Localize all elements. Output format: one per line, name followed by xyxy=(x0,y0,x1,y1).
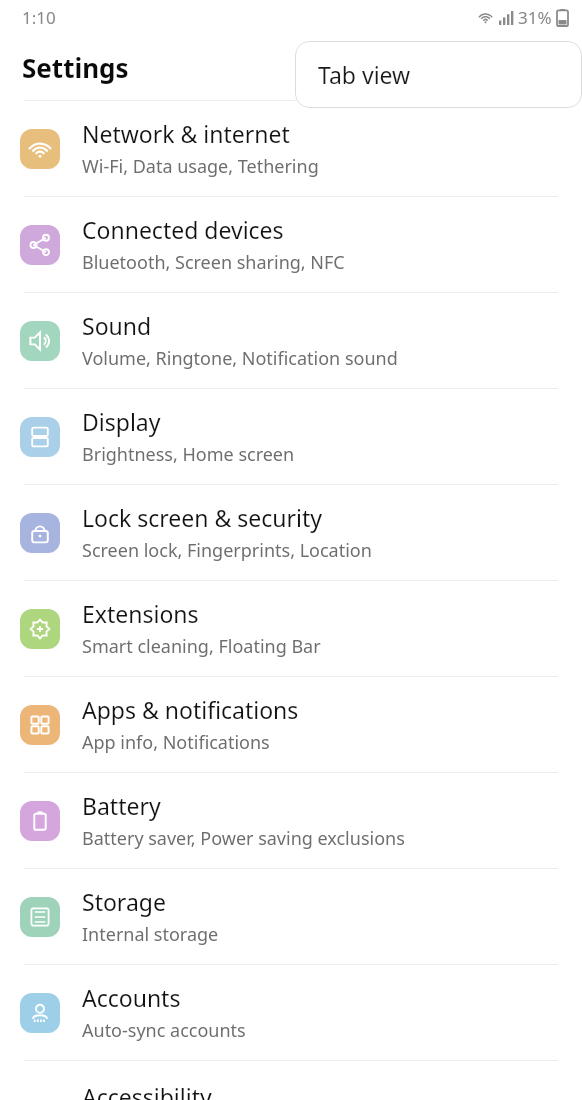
staticText: Display xyxy=(82,406,161,437)
staticText: Bluetooth, Screen sharing, NFC xyxy=(82,250,345,275)
button[interactable]: Accounts xyxy=(0,965,582,1060)
button[interactable]: Sound xyxy=(0,293,582,388)
button[interactable]: Network & internet xyxy=(0,101,582,196)
staticText: Smart cleaning, Floating Bar xyxy=(82,634,321,659)
button[interactable]: Storage xyxy=(0,869,582,964)
staticText: Tab view xyxy=(318,59,411,90)
staticText: Volume, Ringtone, Notification sound xyxy=(82,346,398,371)
button[interactable]: Apps & notifications xyxy=(0,677,582,772)
staticText: App info, Notifications xyxy=(82,730,270,755)
staticText: 31% xyxy=(518,6,552,29)
staticText: Sound xyxy=(82,310,152,341)
button[interactable]: Lock screen & security xyxy=(0,485,582,580)
staticText: Accessibility xyxy=(82,1081,212,1100)
staticText: Settings xyxy=(22,50,129,85)
button[interactable]: Display xyxy=(0,389,582,484)
staticText: Battery xyxy=(82,790,161,821)
staticText: Screen lock, Fingerprints, Location xyxy=(82,538,372,563)
staticText: Wi-Fi, Data usage, Tethering xyxy=(82,154,319,179)
staticText: Apps & notifications xyxy=(82,694,299,725)
staticText: Accounts xyxy=(82,982,181,1013)
staticText: Connected devices xyxy=(82,214,284,245)
staticText: Internal storage xyxy=(82,922,219,947)
staticText: Storage xyxy=(82,886,166,917)
button[interactable]: Tab view xyxy=(295,41,582,108)
staticText: Auto-sync accounts xyxy=(82,1018,246,1043)
button[interactable]: Connected devices xyxy=(0,197,582,292)
staticText: Network & internet xyxy=(82,118,290,149)
button[interactable]: Battery xyxy=(0,773,582,868)
staticText: Extensions xyxy=(82,598,199,629)
button[interactable]: Accessibility xyxy=(0,1061,582,1100)
staticText: 1:10 xyxy=(22,6,56,29)
staticText: Battery saver, Power saving exclusions xyxy=(82,826,405,851)
staticText: Lock screen & security xyxy=(82,502,323,533)
staticText: Brightness, Home screen xyxy=(82,442,295,467)
button[interactable]: Extensions xyxy=(0,581,582,676)
